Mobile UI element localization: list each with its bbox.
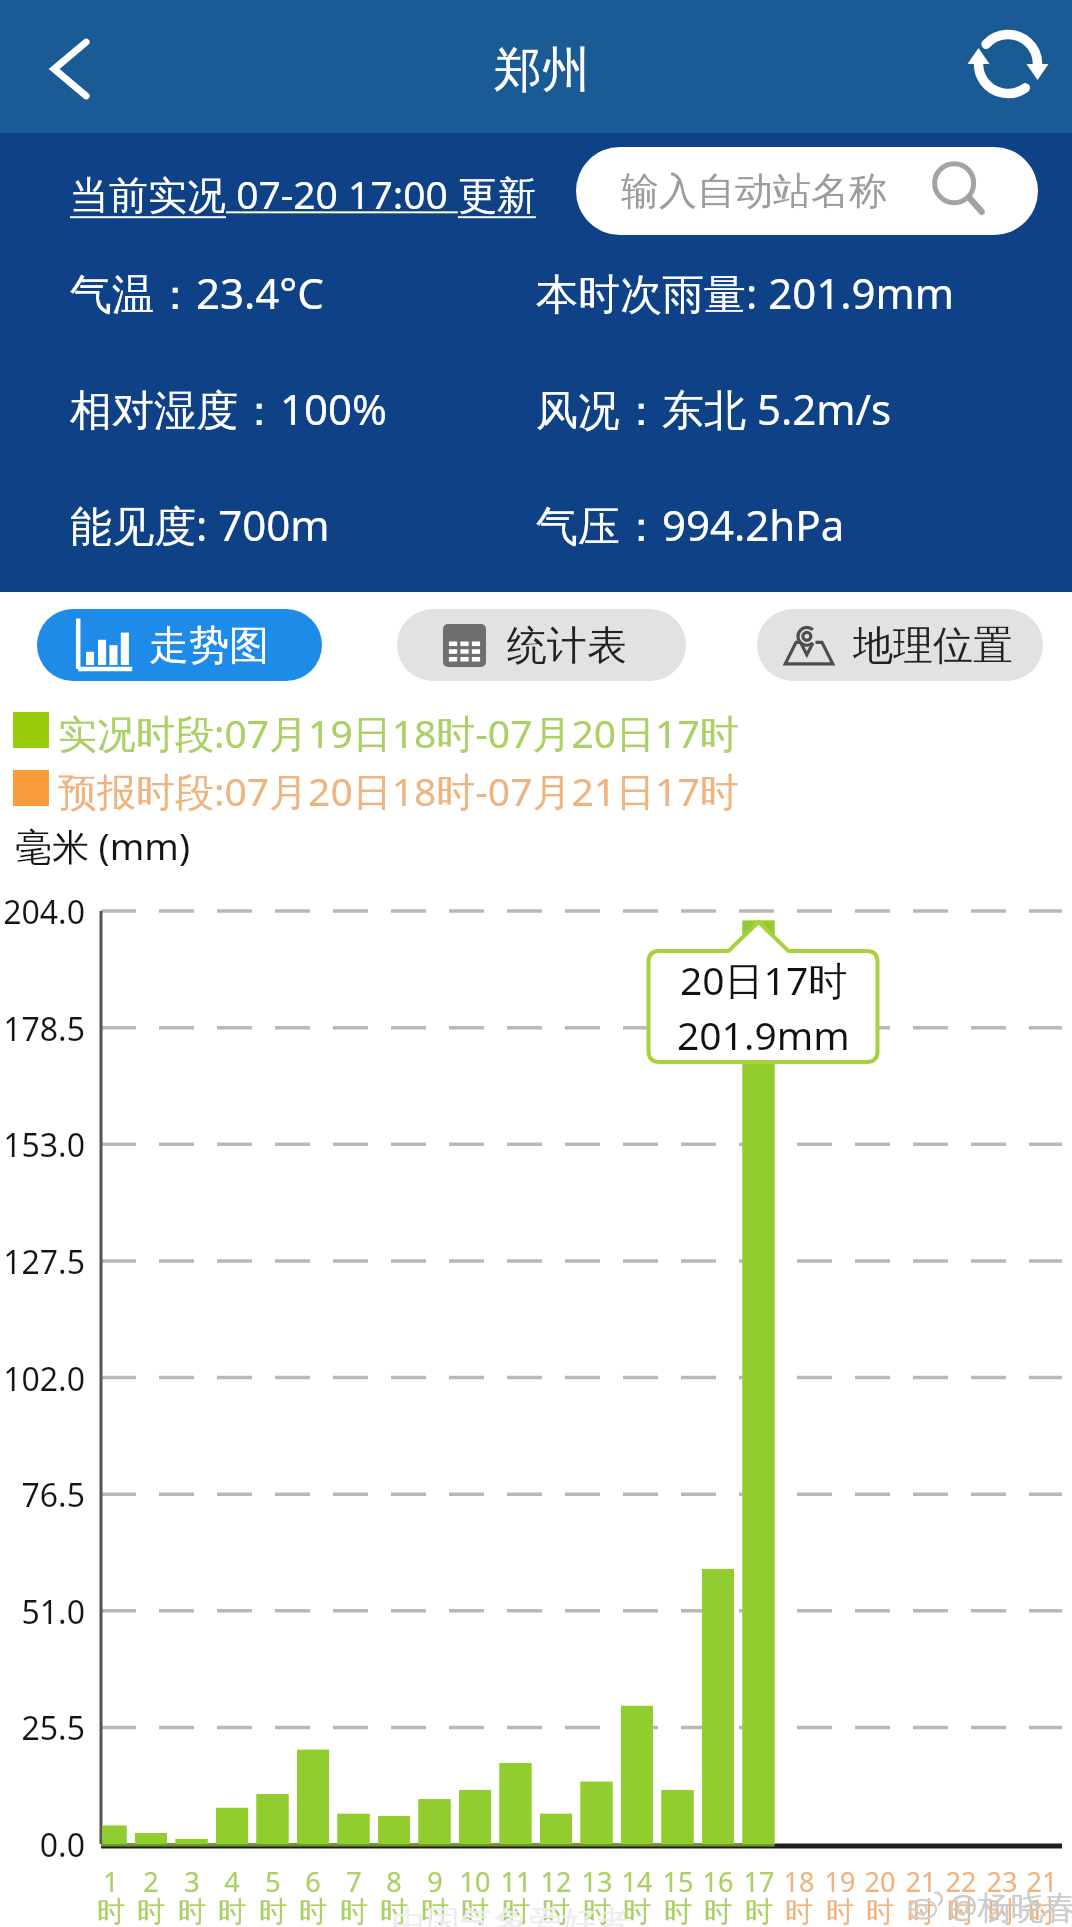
staticText: 时 bbox=[451, 1894, 499, 1927]
staticText: 时 bbox=[978, 1894, 1026, 1927]
staticText: 153.0 bbox=[0, 1123, 85, 1167]
staticText: 时 bbox=[694, 1894, 742, 1927]
staticText: 时 bbox=[856, 1894, 904, 1927]
staticText: 5 bbox=[249, 1863, 297, 1900]
staticText: 14 bbox=[613, 1863, 661, 1900]
staticText: 时 bbox=[87, 1894, 135, 1927]
staticText: 204.0 bbox=[0, 890, 85, 934]
staticText: 能见度: 700m bbox=[70, 496, 330, 553]
staticText: 11 bbox=[492, 1863, 540, 1900]
staticText: 毫米 (mm) bbox=[15, 820, 191, 871]
staticText: 15 bbox=[654, 1863, 702, 1900]
staticText: 时 bbox=[816, 1894, 864, 1927]
staticText: 时 bbox=[330, 1894, 378, 1927]
staticText: 9 bbox=[411, 1863, 459, 1900]
staticText: 中国气象爱好者 bbox=[392, 1902, 630, 1927]
button[interactable]: Refresh bbox=[963, 19, 1053, 109]
staticText: 相对湿度：100% bbox=[70, 380, 387, 437]
staticText: 127.5 bbox=[0, 1240, 85, 1284]
staticText: 时 bbox=[573, 1894, 621, 1927]
staticText: 时 bbox=[289, 1894, 337, 1927]
staticText: 2 bbox=[127, 1863, 175, 1900]
staticText: @杨晓春 bbox=[948, 1884, 1072, 1927]
staticText: 时 bbox=[249, 1894, 297, 1927]
staticText: 18 bbox=[775, 1863, 823, 1900]
staticText: 实况时段:07月19日18时-07月20日17时 bbox=[58, 706, 739, 759]
button[interactable]: 输入自动站名称 bbox=[576, 147, 1038, 235]
button[interactable]: 当前实况 07-20 17:00 更新 bbox=[70, 167, 536, 220]
staticText: 13 bbox=[573, 1863, 621, 1900]
staticText: 102.0 bbox=[0, 1357, 85, 1401]
staticText: 19 bbox=[816, 1863, 864, 1900]
staticText: 气压：994.2hPa bbox=[536, 496, 845, 553]
staticText: 6 bbox=[289, 1863, 337, 1900]
staticText: 输入自动站名称 bbox=[621, 167, 887, 215]
staticText: 21 bbox=[1018, 1863, 1066, 1900]
staticText: 时 bbox=[613, 1894, 661, 1927]
staticText: 时 bbox=[208, 1894, 256, 1927]
staticText: 时 bbox=[370, 1894, 418, 1927]
staticText: 预报时段:07月20日18时-07月21日17时 bbox=[58, 764, 739, 817]
staticText: 时 bbox=[127, 1894, 175, 1927]
staticText: 时 bbox=[532, 1894, 580, 1927]
staticText: 4 bbox=[208, 1863, 256, 1900]
staticText: 时 bbox=[735, 1894, 783, 1927]
button[interactable]: Back bbox=[32, 29, 112, 109]
staticText: 51.0 bbox=[0, 1590, 85, 1634]
button[interactable]: 地理位置 bbox=[757, 609, 1043, 681]
staticText: 201.9mm bbox=[677, 1008, 850, 1061]
staticText: 时 bbox=[654, 1894, 702, 1927]
staticText: 23 bbox=[978, 1863, 1026, 1900]
staticText: 25.5 bbox=[0, 1706, 85, 1750]
staticText: 地理位置 bbox=[853, 620, 1013, 670]
button[interactable]: 走势图 bbox=[37, 609, 322, 681]
staticText: 时 bbox=[775, 1894, 823, 1927]
staticText: 统计表 bbox=[507, 620, 627, 670]
staticText: 8 bbox=[370, 1863, 418, 1900]
staticText: 17 bbox=[735, 1863, 783, 1900]
staticText: 10 bbox=[451, 1863, 499, 1900]
staticText: 走势图 bbox=[149, 620, 269, 670]
staticText: 时 bbox=[411, 1894, 459, 1927]
staticText: 时 bbox=[168, 1894, 216, 1927]
staticText: 16 bbox=[694, 1863, 742, 1900]
staticText: 20日17时 bbox=[680, 953, 848, 1006]
staticText: 22 bbox=[937, 1863, 985, 1900]
staticText: 时 bbox=[897, 1894, 945, 1927]
staticText: 7 bbox=[330, 1863, 378, 1900]
staticText: 12 bbox=[532, 1863, 580, 1900]
staticText: 郑州 bbox=[494, 40, 590, 100]
staticText: 时 bbox=[937, 1894, 985, 1927]
staticText: 时 bbox=[1018, 1894, 1066, 1927]
staticText: 1 bbox=[87, 1863, 135, 1900]
staticText: 时 bbox=[492, 1894, 540, 1927]
button[interactable]: 统计表 bbox=[397, 609, 686, 681]
staticText: 76.5 bbox=[0, 1473, 85, 1517]
staticText: 0.0 bbox=[0, 1823, 85, 1867]
staticText: 风况：东北 5.2m/s bbox=[536, 380, 892, 437]
staticText: 178.5 bbox=[0, 1007, 85, 1051]
staticText: 3 bbox=[168, 1863, 216, 1900]
staticText: 21 bbox=[897, 1863, 945, 1900]
staticText: 本时次雨量: 201.9mm bbox=[536, 264, 955, 321]
staticText: 气温：23.4°C bbox=[70, 264, 324, 321]
staticText: 20 bbox=[856, 1863, 904, 1900]
